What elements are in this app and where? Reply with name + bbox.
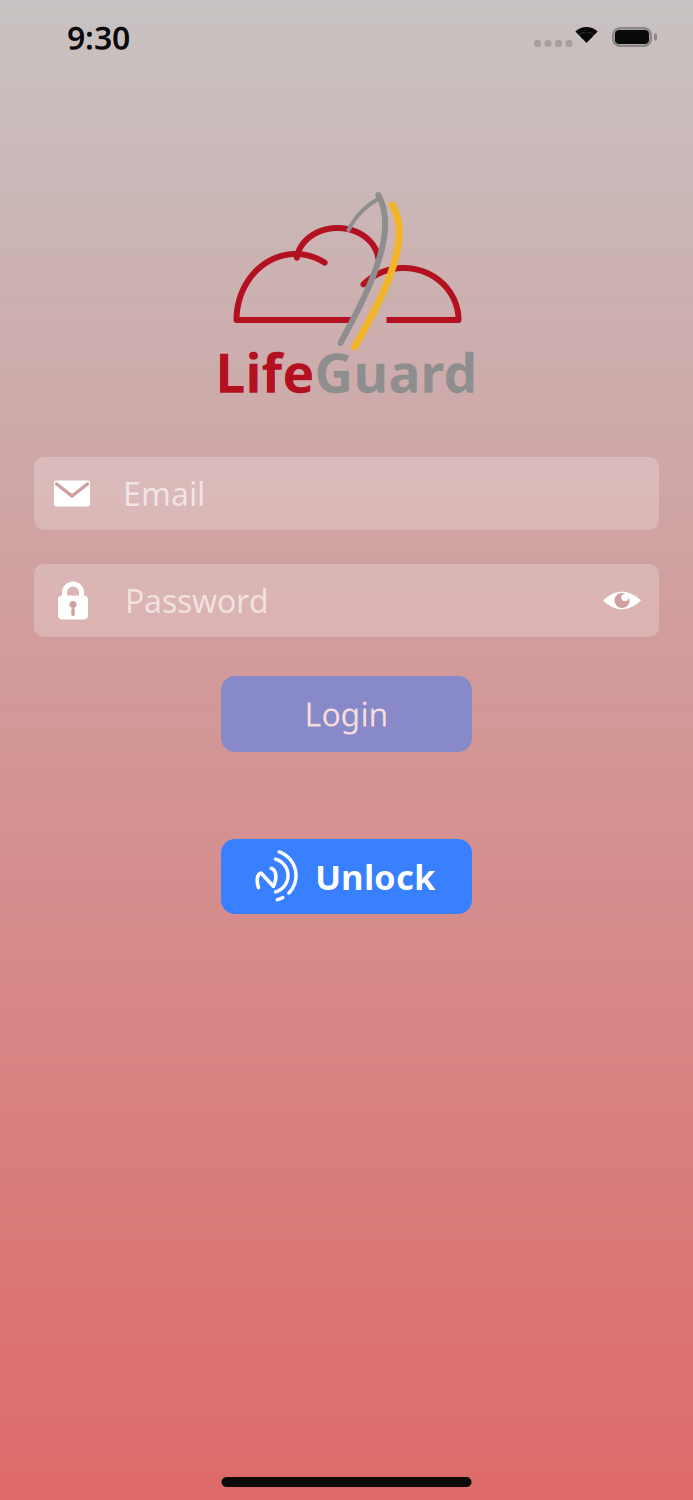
button[interactable]: Login [221,676,472,752]
staticText: Email [123,472,205,515]
staticText: Password [125,579,269,622]
button[interactable]: Show password [591,564,653,637]
button[interactable]: Unlock [221,839,472,914]
staticText: Guard [314,337,477,407]
staticText: Life [215,337,314,407]
staticText: Unlock [315,853,435,899]
staticText: 9:30 [67,16,130,58]
staticText: Login [304,693,388,735]
